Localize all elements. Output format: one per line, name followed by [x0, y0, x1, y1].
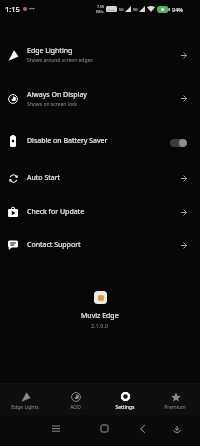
button[interactable]: Disable on Battery Saver [0, 120, 200, 162]
staticText: Check for Update [27, 207, 85, 217]
staticText: AOD [70, 404, 81, 411]
button[interactable]: AOD [50, 383, 100, 415]
staticText: 7.56 [97, 4, 104, 9]
button[interactable] [170, 139, 187, 147]
staticText: Shows on screen lock [27, 101, 77, 108]
staticText: KB/s [96, 9, 104, 14]
staticText: 1:15 [5, 4, 20, 14]
staticText: ••• [29, 6, 35, 13]
staticText: Always On Display [27, 90, 87, 100]
staticText: Settings [115, 404, 135, 411]
staticText: 5G [133, 7, 138, 12]
staticText: Auto Start [27, 173, 61, 183]
button[interactable]: Always On Display [0, 77, 200, 120]
staticText: VoLTE [108, 8, 116, 11]
staticText: Premium [164, 404, 186, 411]
staticText: 94% [172, 6, 183, 13]
button[interactable]: Premium [150, 383, 200, 415]
button[interactable]: Check for Update [0, 194, 200, 230]
staticText: 2.1.0.0 [91, 322, 109, 329]
staticText: Edge Lights [11, 404, 39, 411]
staticText: Edge Lighting [27, 46, 73, 56]
staticText: Shows around screen edges [27, 57, 93, 64]
staticText: Contact Support [27, 240, 81, 250]
staticText: Disable on Battery Saver [27, 136, 170, 146]
button[interactable]: Auto Start [0, 162, 200, 194]
button[interactable]: Contact Support [0, 230, 200, 260]
button[interactable]: Edge Lights [0, 383, 50, 415]
staticText: Muviz Edge [81, 311, 119, 321]
staticText: 5G [119, 7, 124, 12]
button[interactable]: Settings [100, 383, 150, 415]
button[interactable]: Edge Lighting [0, 33, 200, 77]
